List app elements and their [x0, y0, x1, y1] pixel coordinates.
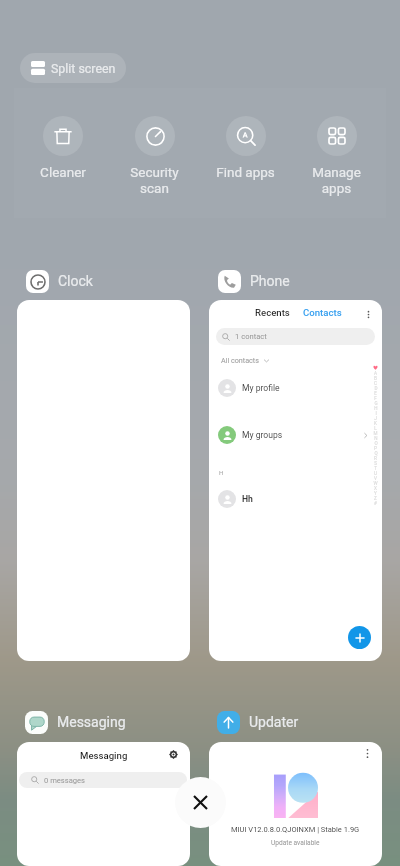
button[interactable]: Clock	[26, 269, 93, 293]
staticText: #	[374, 501, 377, 506]
staticText: Messaging	[57, 714, 126, 730]
staticText: Split screen	[51, 61, 116, 76]
button[interactable]: Split screen	[20, 53, 126, 83]
button[interactable]: Add contact	[348, 626, 371, 649]
staticText: I	[375, 411, 377, 416]
button[interactable]: Messaging	[25, 710, 126, 734]
staticText: Q	[374, 451, 378, 456]
button[interactable]: Close all	[175, 777, 226, 828]
button[interactable]: More options	[360, 746, 374, 760]
button[interactable]: Recents	[209, 300, 382, 661]
staticText: My profile	[242, 383, 280, 393]
staticText: 1 contact	[235, 332, 267, 341]
staticText: Hh	[242, 494, 253, 504]
staticText: Cleaner	[40, 164, 86, 180]
staticText: N	[374, 436, 378, 441]
staticText: My groups	[242, 430, 283, 440]
staticText: J	[374, 416, 377, 421]
staticText: H	[219, 469, 224, 476]
button[interactable]: Cleaner	[17, 116, 109, 180]
button[interactable]: Security scan	[109, 116, 200, 197]
button[interactable]: All contacts	[221, 356, 270, 364]
staticText: R	[374, 456, 377, 461]
staticText: Contacts	[303, 307, 342, 318]
staticText: Update available	[271, 839, 320, 847]
button[interactable]: More options	[362, 308, 375, 321]
staticText: H	[374, 406, 378, 411]
staticText: K	[374, 421, 377, 426]
staticText: S	[374, 461, 377, 466]
staticText: Y	[374, 491, 377, 496]
staticText: W	[373, 481, 378, 486]
staticText: Messaging	[80, 750, 128, 761]
staticText: MIUI V12.0.8.0.QJOINXM | Stable 1.9G	[231, 825, 360, 834]
button[interactable]: Manage apps	[291, 116, 382, 197]
button[interactable]: Contacts	[303, 307, 342, 318]
staticText: V	[374, 476, 377, 481]
staticText: G	[374, 401, 378, 406]
staticText: Clock	[58, 273, 93, 289]
button[interactable]: Messaging	[17, 742, 190, 866]
button[interactable]: My groups	[209, 426, 382, 444]
button[interactable]: 1 contact	[216, 328, 375, 345]
staticText: Recents	[255, 307, 290, 318]
button[interactable]: 0 messages	[19, 772, 187, 788]
button[interactable]: Settings	[166, 747, 180, 761]
staticText: D	[374, 386, 378, 391]
staticText: M	[373, 431, 378, 436]
button[interactable]: Recents	[255, 307, 290, 318]
staticText: E	[374, 391, 377, 396]
staticText: A	[374, 371, 377, 376]
staticText: 0 messages	[44, 776, 86, 785]
staticText: C	[374, 381, 377, 386]
staticText: Security scan	[130, 164, 179, 197]
button[interactable]: My profile	[209, 379, 382, 397]
staticText: All contacts	[221, 356, 259, 364]
staticText: Manage apps	[312, 164, 361, 197]
staticText: Updater	[249, 714, 299, 730]
staticText: L	[374, 426, 377, 431]
button[interactable]: Hh	[209, 490, 382, 508]
staticText: O	[374, 441, 378, 446]
button[interactable]: Updater	[217, 710, 299, 734]
staticText: F	[374, 396, 377, 401]
staticText: T	[374, 466, 377, 471]
staticText: Phone	[250, 273, 290, 289]
button[interactable]: Find apps	[200, 116, 291, 180]
staticText: U	[374, 471, 377, 476]
staticText: Find apps	[216, 164, 275, 180]
button[interactable]: More options	[209, 742, 382, 866]
staticText: X	[374, 486, 377, 491]
button[interactable]: Phone	[218, 269, 290, 293]
staticText: Z	[374, 496, 377, 501]
button[interactable]	[17, 300, 190, 661]
staticText: B	[374, 376, 377, 381]
staticText: P	[374, 446, 377, 451]
